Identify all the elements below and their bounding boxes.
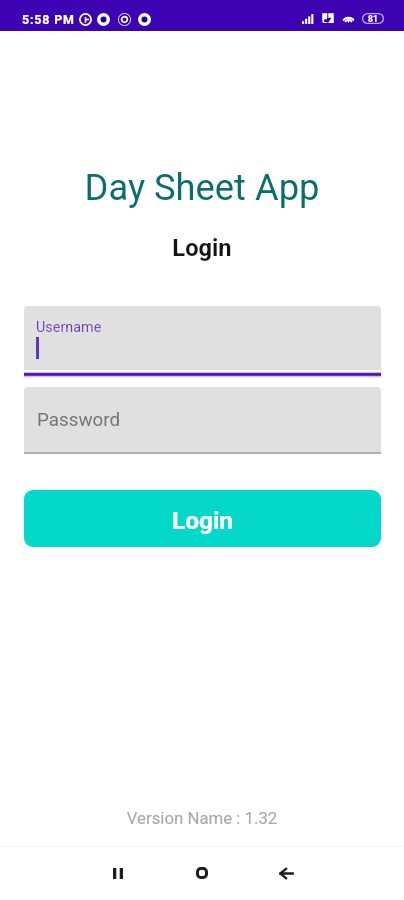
staticText: Username — [36, 319, 102, 336]
staticText: Version Name : 1.32 — [0, 808, 404, 828]
button[interactable]: Login — [24, 490, 381, 547]
button[interactable]: Recent apps — [94, 849, 142, 897]
staticText: 5:58 PM — [22, 12, 75, 27]
staticText: Login — [0, 234, 404, 262]
staticText: Login — [172, 506, 234, 535]
staticText: Password — [37, 409, 121, 431]
staticText: 81 — [368, 14, 378, 24]
button[interactable]: Username — [24, 306, 381, 375]
button[interactable]: Back — [262, 849, 310, 897]
button[interactable]: Home — [178, 849, 226, 897]
staticText: Day Sheet App — [0, 166, 404, 209]
button[interactable]: Password — [24, 387, 381, 455]
